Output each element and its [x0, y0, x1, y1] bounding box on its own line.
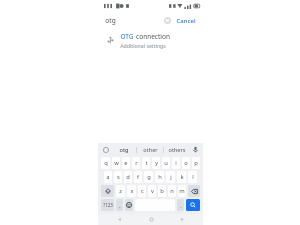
staticText: other: [143, 146, 158, 154]
button[interactable]: n: [168, 185, 176, 197]
button[interactable]: c: [138, 185, 146, 197]
button[interactable]: Cancel: [176, 12, 196, 29]
button[interactable]: v: [148, 185, 156, 197]
button[interactable]: q: [101, 157, 110, 169]
staticText: p: [194, 159, 198, 167]
staticText: q: [104, 159, 108, 167]
staticText: l: [192, 173, 194, 181]
staticText: w: [114, 159, 119, 167]
staticText: n: [170, 187, 174, 195]
button[interactable]: x: [127, 185, 136, 197]
button[interactable]: Home: [141, 214, 161, 225]
staticText: others: [168, 146, 186, 154]
button[interactable]: m: [178, 185, 186, 197]
button[interactable]: .: [177, 199, 184, 211]
staticText: a: [106, 173, 110, 181]
button[interactable]: u: [162, 157, 170, 169]
button[interactable]: ?123: [101, 199, 114, 211]
button[interactable]: Clear search: [162, 15, 173, 26]
button[interactable]: g: [144, 171, 153, 183]
staticText: j: [170, 173, 172, 181]
staticText: r: [135, 159, 138, 167]
staticText: h: [158, 173, 162, 181]
staticText: y: [155, 159, 158, 167]
button[interactable]: b: [158, 185, 166, 197]
button[interactable]: others: [164, 143, 190, 156]
staticText: x: [130, 187, 134, 195]
button[interactable]: h: [155, 171, 164, 183]
button[interactable]: w: [112, 157, 120, 169]
button[interactable]: i: [172, 157, 180, 169]
staticText: ?123: [103, 202, 113, 208]
staticText: d: [126, 173, 130, 181]
button[interactable]: o: [182, 157, 190, 169]
staticText: i: [175, 159, 177, 167]
staticText: t: [145, 159, 148, 167]
staticText: Additional settings: [120, 42, 166, 49]
button[interactable]: Voice input: [190, 143, 201, 156]
staticText: .: [180, 202, 182, 209]
button[interactable]: ,: [116, 199, 123, 211]
staticText: c: [141, 187, 144, 195]
staticText: connection: [136, 32, 170, 41]
staticText: m: [179, 187, 185, 195]
button[interactable]: Recents: [172, 214, 192, 225]
button[interactable]: otg: [105, 12, 162, 29]
staticText: g: [147, 173, 151, 181]
button[interactable]: a: [104, 171, 112, 183]
staticText: otg: [119, 146, 129, 154]
button[interactable]: Shift: [101, 185, 114, 197]
button[interactable]: k: [177, 171, 186, 183]
button[interactable]: l: [188, 171, 197, 183]
staticText: OTG: [120, 32, 134, 41]
button[interactable]: e: [122, 157, 130, 169]
staticText: s: [117, 173, 120, 181]
button[interactable]: Emoji: [125, 199, 133, 211]
staticText: ,: [119, 202, 121, 209]
button[interactable]: otg: [111, 143, 136, 156]
button[interactable]: Search: [186, 199, 200, 211]
staticText: e: [124, 159, 128, 167]
button[interactable]: s: [114, 171, 122, 183]
button[interactable]: other: [137, 143, 163, 156]
button[interactable]: y: [152, 157, 160, 169]
staticText: b: [160, 187, 164, 195]
button[interactable]: t: [142, 157, 150, 169]
button[interactable]: p: [192, 157, 200, 169]
staticText: v: [151, 187, 154, 195]
staticText: otg: [105, 16, 116, 25]
button[interactable]: OTG: [98, 29, 203, 51]
staticText: k: [180, 173, 184, 181]
staticText: z: [119, 187, 122, 195]
staticText: Cancel: [176, 17, 196, 25]
button[interactable]: r: [132, 157, 140, 169]
staticText: o: [184, 159, 188, 167]
button[interactable]: Keyboard options: [100, 143, 111, 156]
button[interactable]: f: [134, 171, 142, 183]
button[interactable]: z: [116, 185, 125, 197]
button[interactable]: j: [166, 171, 175, 183]
staticText: f: [137, 173, 139, 181]
button[interactable]: Back: [109, 214, 129, 225]
staticText: u: [164, 159, 168, 167]
button[interactable]: d: [124, 171, 132, 183]
button[interactable]: Backspace: [188, 185, 200, 197]
